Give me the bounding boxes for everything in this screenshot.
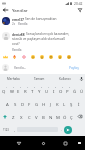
staticText: Sonuçlandı ercçok kazandım,: [26, 32, 70, 36]
staticText: 0: [69, 86, 71, 89]
staticText: 3: [20, 86, 22, 89]
staticText: L: [63, 101, 66, 107]
button[interactable]: D: [19, 97, 26, 110]
button[interactable]: X: [17, 110, 25, 123]
staticText: 4: [27, 86, 29, 89]
button[interactable]: Q: [0, 84, 8, 97]
button[interactable]: Ç: [68, 110, 75, 123]
staticText: N: [49, 114, 53, 120]
button[interactable]: F: [26, 97, 33, 110]
button[interactable]: Filter: [74, 6, 85, 14]
button[interactable]: V: [33, 110, 40, 123]
staticText: K: [56, 101, 59, 107]
button[interactable]: İ: [75, 97, 82, 110]
button[interactable]: A: [3, 97, 11, 110]
staticText: ?123: [3, 128, 9, 132]
button[interactable]: B: [40, 110, 47, 123]
staticText: E: [17, 88, 20, 94]
staticText: Y: [38, 88, 41, 94]
button[interactable]: K: [54, 97, 61, 110]
staticText: Yanıtla: [12, 48, 22, 52]
staticText: O: [59, 88, 63, 94]
button[interactable]: E: [15, 84, 22, 97]
button[interactable]: Kullanıcı: [52, 74, 78, 84]
button[interactable]: Ü: [78, 84, 85, 97]
button[interactable]: Voice input: [78, 74, 85, 84]
staticText: R: [24, 88, 27, 94]
staticText: Tamam: [34, 77, 45, 81]
button[interactable]: deniz88: [0, 32, 85, 52]
button[interactable]: Switch keyboard: [75, 139, 83, 147]
button[interactable]: Crown reaction: [1, 54, 10, 60]
button[interactable]: W: [8, 84, 15, 97]
button[interactable]: Hide keyboard: [14, 138, 24, 148]
staticText: deniz88: [12, 32, 25, 36]
button[interactable]: ?123: [0, 123, 11, 136]
staticText: Z: [12, 114, 15, 120]
button[interactable]: I: [50, 84, 57, 97]
button[interactable]: Emoji reaction: [28, 54, 37, 60]
staticText: T: [31, 88, 34, 94]
staticText: Kullanıcı: [59, 77, 71, 81]
button[interactable]: ,: [11, 123, 17, 136]
button[interactable]: T: [29, 84, 36, 97]
staticText: Ö: [63, 114, 67, 120]
button[interactable]: S: [11, 97, 19, 110]
button[interactable]: Back: [0, 6, 10, 14]
button[interactable]: Send: [64, 126, 72, 134]
button[interactable]: Merhaba: [0, 74, 26, 84]
button[interactable]: Emoji reaction: [46, 54, 55, 60]
button[interactable]: O: [57, 84, 64, 97]
button[interactable]: Backspace: [75, 110, 85, 123]
staticText: Ş: [70, 101, 73, 107]
button[interactable]: Flower reaction: [19, 54, 28, 60]
button[interactable]: Emoji reaction: [55, 54, 64, 60]
button[interactable]: Y: [36, 84, 43, 97]
button[interactable]: Recents: [60, 138, 70, 148]
button[interactable]: Shift: [0, 110, 9, 123]
staticText: Yanıtlar: [12, 7, 28, 13]
staticText: G: [35, 101, 39, 107]
staticText: M: [56, 114, 60, 120]
button[interactable]: Ş: [68, 97, 75, 110]
staticText: J: [50, 101, 52, 107]
staticText: D: [21, 101, 25, 107]
button[interactable]: J: [47, 97, 54, 110]
button[interactable]: emel37: [0, 17, 85, 26]
staticText: ,: [14, 127, 15, 132]
button[interactable]: Z: [9, 110, 17, 123]
staticText: Sen de konuşmaktan: [25, 17, 57, 21]
staticText: Merhaba: [7, 77, 20, 81]
button[interactable]: R: [22, 84, 29, 97]
staticText: Ü: [80, 88, 84, 94]
button[interactable]: Emoji reaction: [64, 54, 73, 60]
button[interactable]: Emoji reaction: [37, 54, 46, 60]
button[interactable]: G: [33, 97, 40, 110]
staticText: A: [6, 101, 9, 107]
staticText: I: [53, 88, 55, 94]
button[interactable]: Ğ: [71, 84, 78, 97]
button[interactable]: M: [54, 110, 61, 123]
staticText: 5: [34, 86, 36, 89]
button[interactable]: Paylaş: [68, 64, 80, 72]
button[interactable]: Home: [38, 138, 48, 148]
button[interactable]: Ö: [61, 110, 68, 123]
button[interactable]: C: [25, 110, 33, 123]
button[interactable]: P: [64, 84, 71, 97]
staticText: 7: [48, 86, 50, 89]
button[interactable]: L: [61, 97, 68, 110]
button[interactable]: H: [40, 97, 47, 110]
staticText: Yanıtla: [18, 22, 28, 26]
button[interactable]: Tamam: [26, 74, 52, 84]
staticText: H: [42, 101, 46, 107]
staticText: X: [20, 114, 23, 120]
button[interactable]: Fire reaction: [10, 54, 19, 60]
staticText: emel37: [12, 17, 24, 21]
button[interactable]: N: [47, 110, 54, 123]
staticText: 1: [6, 86, 8, 89]
button[interactable]: U: [43, 84, 50, 97]
staticText: F: [28, 101, 31, 107]
staticText: Ç: [70, 114, 73, 120]
